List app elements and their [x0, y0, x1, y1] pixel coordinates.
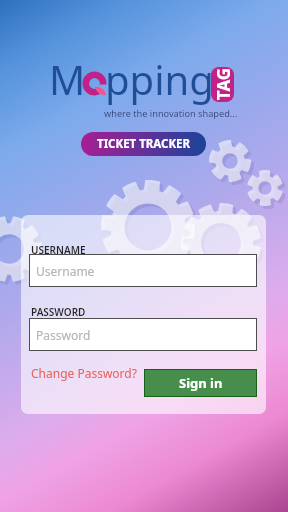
button[interactable]: Sign in [144, 369, 257, 397]
button[interactable]: Password [29, 318, 257, 351]
staticText: Sign in [179, 374, 223, 392]
staticText: Username [36, 263, 95, 279]
staticText: Change Password? [31, 365, 137, 381]
staticText: pping [105, 52, 214, 106]
staticText: TAG [211, 67, 234, 100]
staticText: M [49, 52, 86, 106]
staticText: USERNAME [31, 243, 86, 257]
staticText: PASSWORD [31, 305, 86, 319]
staticText: Password [36, 327, 91, 343]
button[interactable]: Username [29, 254, 257, 287]
button[interactable]: TICKET TRACKER [81, 132, 206, 156]
staticText: where the innovation shaped... [104, 107, 238, 120]
button[interactable]: Change Password? [29, 363, 139, 383]
staticText: TICKET TRACKER [97, 136, 191, 152]
